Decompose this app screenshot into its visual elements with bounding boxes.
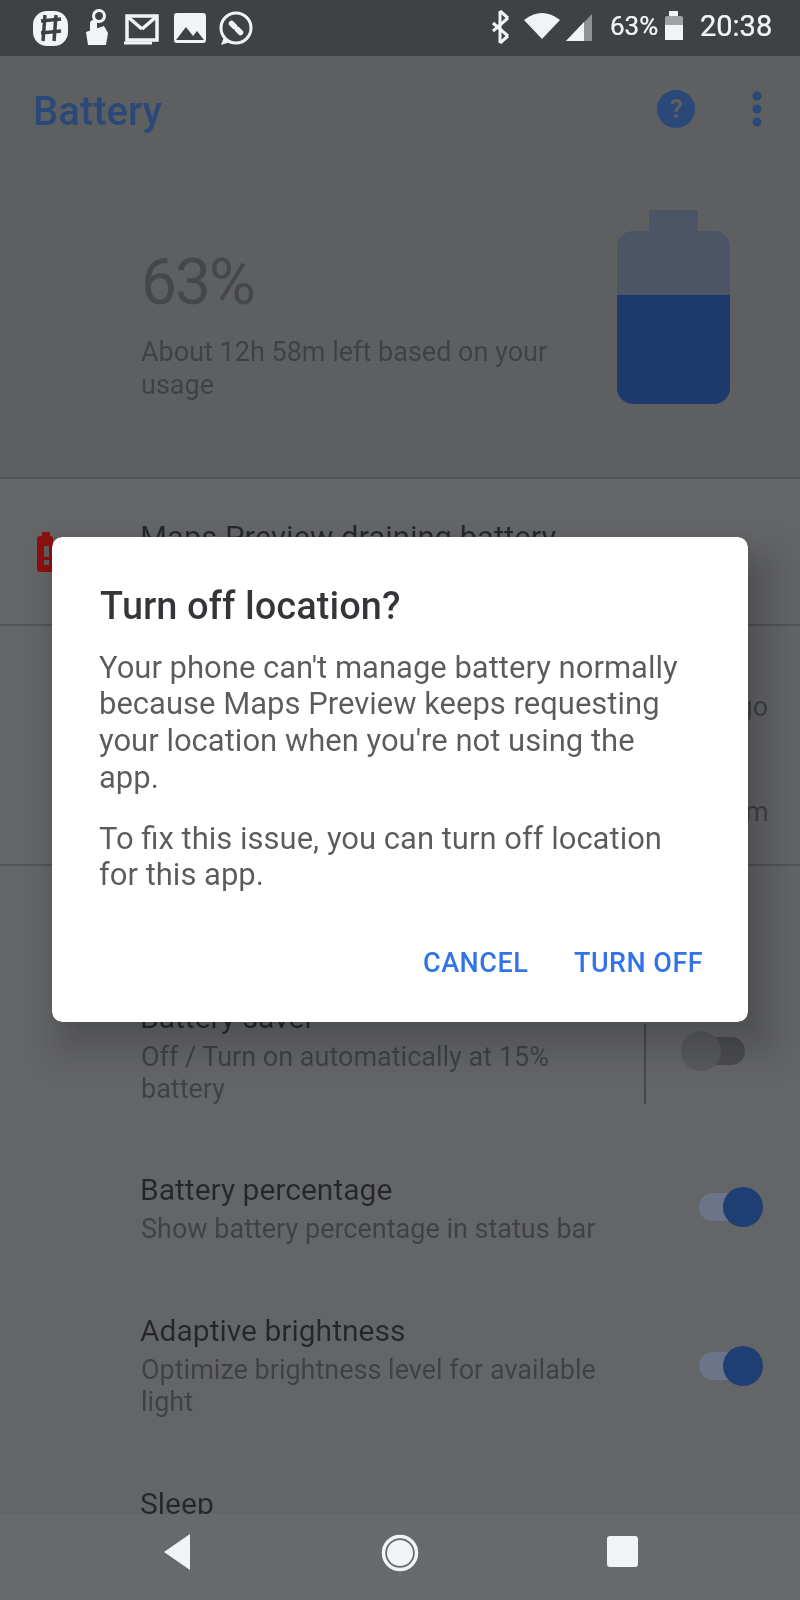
staticText: Battery percentage — [140, 1172, 393, 1207]
button[interactable] — [0, 746, 800, 864]
staticText: Sleep — [140, 1486, 214, 1521]
staticText: battery — [141, 1073, 225, 1105]
staticText: Optimize brightness level for available — [141, 1354, 596, 1386]
staticText: Your phone can't manage battery normally… — [99, 649, 678, 796]
button[interactable] — [540, 1514, 700, 1600]
staticText: 20:38 — [700, 9, 773, 43]
staticText: TURN OFF — [574, 947, 704, 979]
button[interactable] — [320, 1514, 480, 1600]
button[interactable] — [683, 1037, 745, 1065]
button[interactable] — [699, 1193, 761, 1221]
staticText: 9 hours ago — [626, 691, 769, 723]
staticText: 2h 8m — [693, 796, 769, 828]
staticText: usage — [141, 369, 214, 401]
staticText: Turn off location? — [100, 584, 401, 629]
staticText: Battery saver — [140, 1000, 315, 1035]
button[interactable] — [0, 1275, 800, 1440]
button[interactable] — [699, 1352, 761, 1380]
staticText: light — [141, 1386, 193, 1418]
button[interactable] — [0, 1440, 800, 1514]
staticText: Maps Preview draining battery — [140, 519, 557, 555]
staticText: Adaptive brightness — [140, 1313, 406, 1348]
button[interactable]: CANCEL — [406, 933, 546, 993]
staticText: CANCEL — [423, 947, 529, 979]
button[interactable] — [0, 1130, 800, 1275]
staticText: 63% — [610, 11, 659, 41]
staticText: Show battery percentage in status bar — [141, 1213, 596, 1245]
button[interactable] — [120, 1514, 280, 1600]
staticText: Battery — [33, 88, 162, 135]
button[interactable] — [0, 866, 800, 1121]
button[interactable] — [0, 479, 800, 624]
button[interactable]: ? — [657, 90, 695, 128]
staticText: About 12h 58m left based on your — [141, 336, 548, 368]
staticText: Off / Turn on automatically at 15% — [141, 1041, 549, 1073]
button[interactable] — [0, 626, 800, 746]
staticText: To fix this issue, you can turn off loca… — [99, 820, 662, 893]
button[interactable]: TURN OFF — [559, 933, 719, 993]
staticText: ? — [670, 94, 683, 124]
staticText: 63% — [141, 245, 254, 305]
